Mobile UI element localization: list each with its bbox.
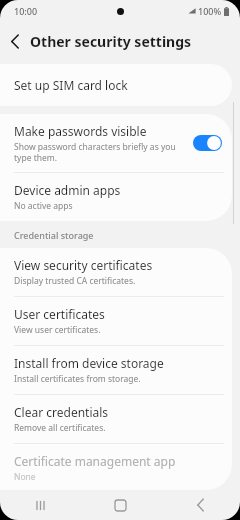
staticText: User certificates: [14, 306, 105, 322]
staticText: Install certificates from storage.: [14, 373, 141, 385]
staticText: Other security settings: [30, 32, 192, 51]
button[interactable]: Back: [160, 490, 240, 520]
staticText: 100%: [198, 5, 222, 17]
button[interactable]: Set up SIM card lock: [0, 64, 232, 106]
button[interactable]: Install from device storage: [0, 346, 232, 394]
button[interactable]: Device admin apps: [0, 173, 232, 221]
staticText: 10:00: [14, 5, 38, 17]
staticText: Certificate management app: [14, 453, 176, 469]
staticText: Device admin apps: [14, 182, 121, 198]
staticText: Credential storage: [14, 229, 94, 241]
staticText: View security certificates: [14, 257, 153, 273]
staticText: View user certificates.: [14, 324, 101, 336]
button[interactable]: Navigate up: [0, 26, 30, 56]
staticText: Remove all certificates.: [14, 422, 106, 434]
button[interactable]: Certificate management app: [0, 444, 232, 490]
button[interactable]: Home: [80, 490, 160, 520]
staticText: Clear credentials: [14, 404, 109, 420]
button[interactable]: User certificates: [0, 297, 232, 345]
button[interactable]: Recent apps: [0, 490, 80, 520]
staticText: Show password characters briefly as you …: [14, 141, 187, 163]
staticText: Make passwords visible: [14, 123, 147, 139]
staticText: Display trusted CA certificates.: [14, 275, 136, 287]
button[interactable]: View security certificates: [0, 248, 232, 296]
button[interactable]: Clear credentials: [0, 395, 232, 443]
staticText: No active apps: [14, 200, 73, 212]
button[interactable]: Make passwords visible: [193, 135, 222, 151]
button[interactable]: Make passwords visible: [0, 114, 232, 172]
staticText: None: [14, 471, 36, 481]
staticText: Install from device storage: [14, 355, 164, 371]
staticText: Set up SIM card lock: [14, 77, 128, 93]
